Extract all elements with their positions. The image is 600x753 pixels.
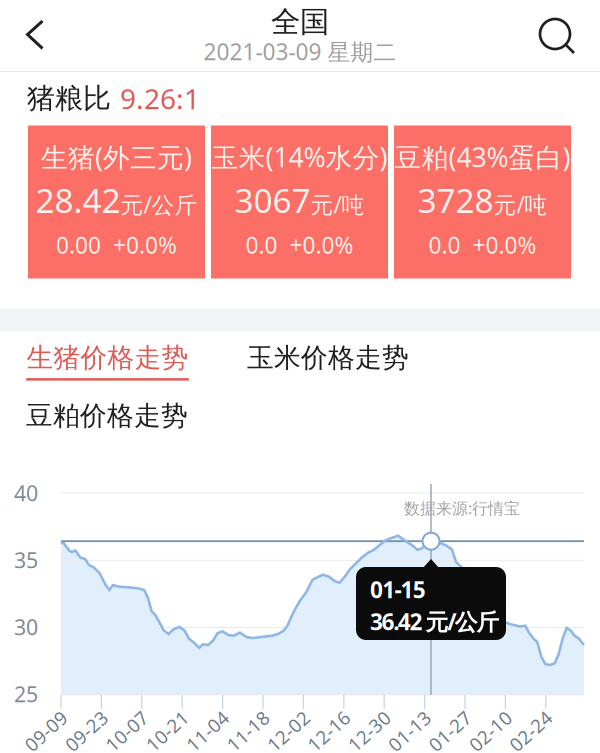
button[interactable]: Search (529, 4, 585, 68)
button[interactable]: 生猪(外三元) (28, 125, 205, 278)
staticText: 02-10 (465, 719, 515, 743)
button[interactable]: 玉米价格走势 (247, 339, 409, 383)
button[interactable]: 豆粕价格走势 (26, 397, 188, 441)
staticText: 元/吨 (493, 189, 547, 219)
staticText: 09-23 (61, 719, 111, 743)
button[interactable]: 玉米(14%水分) (211, 125, 388, 278)
button[interactable]: Back (7, 3, 63, 67)
staticText: 元/公斤 (120, 189, 197, 219)
staticText: 0.00 (56, 230, 101, 260)
staticText: +0.0% (113, 230, 177, 260)
staticText: 09-09 (21, 719, 71, 743)
staticText: 全国 (271, 4, 329, 40)
staticText: 生猪(外三元) (41, 139, 192, 175)
staticText: 28.42 (35, 178, 120, 222)
staticText: 02-24 (506, 719, 556, 743)
staticText: 猪粮比 (27, 81, 111, 116)
staticText: +0.0% (472, 230, 536, 260)
staticText: 25 (14, 680, 38, 708)
staticText: 3067 (234, 178, 310, 222)
staticText: 生猪价格走势 (26, 341, 188, 374)
staticText: 数据来源:行情宝 (404, 497, 520, 519)
button[interactable]: 豆粕(43%蛋白) (394, 125, 571, 278)
staticText: 9.26:1 (120, 80, 200, 117)
staticText: 玉米价格走势 (247, 341, 409, 374)
staticText: 2021-03-09 星期二 (203, 36, 396, 66)
staticText: 40 (14, 479, 38, 507)
staticText: 36.42 元/公斤 (370, 606, 499, 637)
staticText: 10-07 (102, 719, 152, 743)
staticText: 30 (14, 613, 38, 641)
staticText: 0.0 (245, 230, 277, 260)
staticText: 12-30 (344, 719, 394, 743)
staticText: 01-15 (370, 574, 426, 604)
staticText: 35 (14, 546, 38, 574)
staticText: 豆粕(43%蛋白) (394, 139, 570, 175)
staticText: 01-27 (425, 719, 475, 743)
staticText: 玉米(14%水分) (211, 139, 387, 175)
staticText: +0.0% (289, 230, 353, 260)
button[interactable]: 生猪价格走势 (26, 339, 189, 383)
staticText: 11-04 (183, 719, 233, 743)
staticText: 11-18 (223, 719, 273, 743)
staticText: 元/吨 (310, 189, 364, 219)
staticText: 12-16 (304, 719, 354, 743)
staticText: 3728 (417, 178, 493, 222)
staticText: 10-21 (142, 719, 192, 743)
staticText: 0.0 (428, 230, 460, 260)
staticText: 12-02 (263, 719, 313, 743)
staticText: 01-13 (385, 719, 435, 743)
staticText: 豆粕价格走势 (26, 399, 188, 432)
